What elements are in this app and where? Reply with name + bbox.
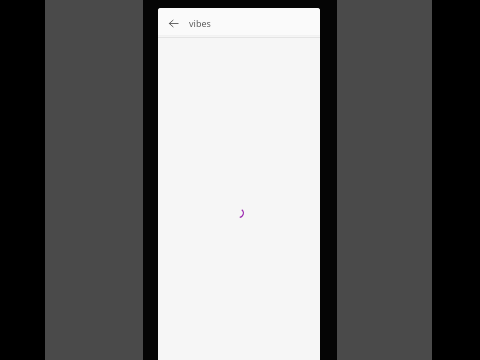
staticText: vibes xyxy=(189,17,211,29)
button[interactable]: Navigate up xyxy=(162,12,184,34)
